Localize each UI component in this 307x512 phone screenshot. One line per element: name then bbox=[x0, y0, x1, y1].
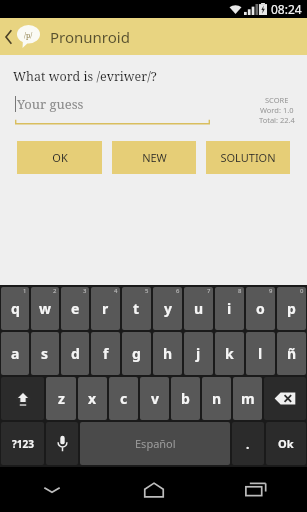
button[interactable]: i bbox=[215, 287, 244, 330]
button[interactable]: Voice input bbox=[46, 422, 78, 465]
button[interactable]: f bbox=[91, 332, 120, 375]
button[interactable]: Home bbox=[103, 467, 205, 512]
staticText: s bbox=[41, 344, 49, 363]
button[interactable]: OK bbox=[17, 141, 102, 174]
staticText: SCORE bbox=[265, 95, 289, 105]
button[interactable]: Recent apps bbox=[205, 467, 307, 512]
button[interactable]: a bbox=[1, 332, 29, 375]
staticText: x bbox=[88, 389, 97, 408]
staticText: /p/ bbox=[24, 31, 33, 41]
staticText: 6 bbox=[176, 287, 180, 295]
button[interactable]: u bbox=[184, 287, 213, 330]
staticText: r bbox=[102, 299, 109, 318]
staticText: k bbox=[225, 344, 234, 363]
staticText: m bbox=[241, 389, 255, 408]
button[interactable]: o bbox=[246, 287, 275, 330]
staticText: 1 bbox=[23, 287, 27, 295]
button[interactable]: l bbox=[246, 332, 275, 375]
staticText: Pronunroid bbox=[50, 27, 130, 47]
staticText: v bbox=[151, 389, 159, 408]
staticText: z bbox=[58, 389, 65, 408]
staticText: b bbox=[181, 389, 190, 408]
staticText: NEW bbox=[142, 150, 167, 165]
button[interactable]: k bbox=[215, 332, 244, 375]
button[interactable]: d bbox=[61, 332, 89, 375]
staticText: ?123 bbox=[12, 437, 34, 451]
button[interactable]: c bbox=[109, 377, 138, 420]
staticText: 2 bbox=[53, 287, 57, 295]
staticText: What word is /evriwer/? bbox=[13, 68, 157, 85]
button[interactable]: SOLUTION bbox=[206, 141, 290, 174]
staticText: 3 bbox=[83, 287, 87, 295]
staticText: 5 bbox=[145, 287, 149, 295]
staticText: 4 bbox=[114, 287, 118, 295]
button[interactable]: y bbox=[153, 287, 182, 330]
button[interactable]: p bbox=[277, 287, 306, 330]
button[interactable]: Hide keyboard bbox=[0, 467, 103, 512]
button[interactable]: q bbox=[1, 287, 29, 330]
button[interactable]: j bbox=[184, 332, 213, 375]
staticText: OK bbox=[52, 150, 68, 165]
button[interactable]: t bbox=[122, 287, 151, 330]
button[interactable]: Navigate up bbox=[0, 18, 42, 55]
staticText: n bbox=[212, 389, 222, 408]
staticText: q bbox=[11, 299, 20, 318]
button[interactable]: b bbox=[171, 377, 200, 420]
button[interactable]: m bbox=[233, 377, 262, 420]
button[interactable]: s bbox=[31, 332, 59, 375]
staticText: Your guess bbox=[17, 95, 84, 113]
button[interactable]: v bbox=[140, 377, 169, 420]
staticText: . bbox=[246, 436, 250, 452]
button[interactable]: Ok bbox=[266, 422, 306, 465]
staticText: h bbox=[163, 344, 173, 363]
staticText: Word: 1.0 bbox=[260, 105, 294, 115]
staticText: d bbox=[71, 344, 80, 363]
button[interactable]: z bbox=[46, 377, 76, 420]
staticText: l bbox=[258, 344, 263, 363]
staticText: o bbox=[256, 299, 265, 318]
staticText: p bbox=[287, 299, 296, 318]
button[interactable]: Backspace bbox=[264, 377, 306, 420]
button[interactable]: h bbox=[153, 332, 182, 375]
staticText: i bbox=[227, 299, 232, 318]
button[interactable]: e bbox=[61, 287, 89, 330]
staticText: a bbox=[11, 344, 20, 363]
button[interactable]: Shift bbox=[1, 377, 44, 420]
button[interactable]: . bbox=[232, 422, 264, 465]
staticText: Total: 22.4 bbox=[259, 115, 295, 125]
button[interactable]: NEW bbox=[112, 141, 196, 174]
staticText: 9 bbox=[269, 287, 273, 295]
button[interactable]: g bbox=[122, 332, 151, 375]
button[interactable]: ñ bbox=[277, 332, 306, 375]
staticText: ñ bbox=[287, 344, 297, 363]
staticText: w bbox=[39, 299, 51, 318]
staticText: Ok bbox=[278, 436, 294, 451]
staticText: e bbox=[71, 299, 80, 318]
staticText: 8 bbox=[238, 287, 242, 295]
button[interactable]: ?123 bbox=[1, 422, 44, 465]
button[interactable]: n bbox=[202, 377, 231, 420]
button[interactable]: x bbox=[78, 377, 107, 420]
staticText: 7 bbox=[207, 287, 211, 295]
button[interactable]: w bbox=[31, 287, 59, 330]
staticText: j bbox=[196, 344, 201, 363]
staticText: y bbox=[164, 299, 172, 318]
button[interactable]: r bbox=[91, 287, 120, 330]
staticText: c bbox=[120, 389, 128, 408]
staticText: Español bbox=[135, 436, 176, 451]
staticText: 0 bbox=[300, 287, 304, 295]
staticText: f bbox=[103, 344, 109, 363]
staticText: g bbox=[132, 344, 141, 363]
staticText: t bbox=[133, 299, 140, 318]
button[interactable]: Space bbox=[80, 422, 230, 465]
button[interactable]: Your guess bbox=[15, 95, 210, 125]
staticText: SOLUTION bbox=[220, 150, 276, 165]
staticText: 08:24 bbox=[271, 1, 302, 17]
staticText: u bbox=[194, 299, 204, 318]
